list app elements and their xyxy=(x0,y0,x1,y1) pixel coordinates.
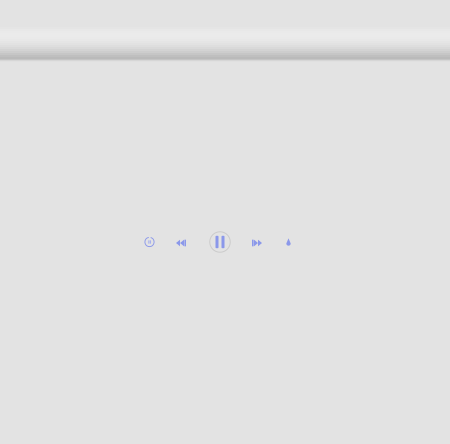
button[interactable]: Pause xyxy=(204,226,236,258)
button[interactable]: AirPlay xyxy=(275,229,301,255)
button[interactable]: Previous track xyxy=(168,230,194,256)
button[interactable]: Skip back 15 seconds xyxy=(136,229,162,255)
button[interactable]: Next track xyxy=(244,230,270,256)
